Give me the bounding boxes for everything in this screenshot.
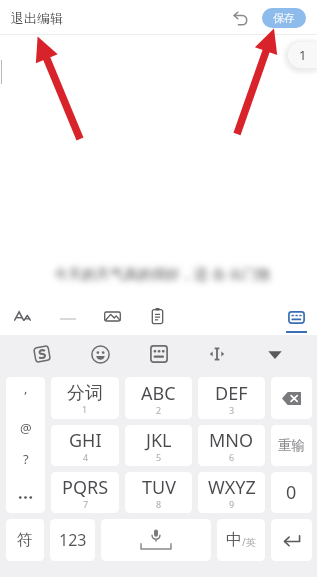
staticText: WXYZ xyxy=(208,475,256,500)
button[interactable]: , xyxy=(6,377,45,513)
staticText: 9 xyxy=(229,498,235,510)
button[interactable]: Undo xyxy=(228,6,252,30)
button[interactable]: Keyboard xyxy=(275,297,317,335)
staticText: 1 xyxy=(82,403,88,415)
staticText: ABC xyxy=(141,381,176,406)
staticText: 3 xyxy=(229,404,235,416)
staticText: ? xyxy=(23,450,29,466)
button[interactable]: Divider line xyxy=(45,297,90,335)
button[interactable]: Delete xyxy=(271,377,312,419)
staticText: DEF xyxy=(215,381,248,406)
staticText: 6 xyxy=(229,451,235,463)
staticText: , xyxy=(24,379,28,395)
button[interactable]: GHI xyxy=(51,425,119,466)
staticText: 1 xyxy=(299,46,307,64)
button[interactable]: 退出编辑 xyxy=(11,10,63,26)
button[interactable]: Voice input / space xyxy=(101,519,211,561)
staticText: MNO xyxy=(209,428,254,453)
button[interactable]: ABC xyxy=(125,377,192,419)
staticText: JKL xyxy=(146,428,172,453)
button[interactable]: JKL xyxy=(125,425,192,466)
button[interactable]: DEF xyxy=(198,377,265,419)
button[interactable]: 中 xyxy=(217,519,265,561)
button[interactable]: PQRS xyxy=(51,472,119,513)
button[interactable]: Hide keyboard xyxy=(262,341,288,367)
button[interactable]: MNO xyxy=(198,425,265,466)
button[interactable]: TUV xyxy=(125,472,192,513)
staticText: /英 xyxy=(242,535,256,549)
staticText: 123 xyxy=(59,529,87,551)
button[interactable]: Sogou input xyxy=(29,341,55,367)
button[interactable]: Enter xyxy=(271,519,312,561)
button[interactable]: WXYZ xyxy=(198,472,265,513)
button[interactable]: Font size xyxy=(0,297,45,335)
staticText: 4 xyxy=(83,451,89,463)
staticText: 中 xyxy=(226,530,242,550)
staticText: 0 xyxy=(286,480,297,505)
staticText: TUV xyxy=(142,475,176,500)
staticText: 8 xyxy=(156,498,162,510)
button[interactable]: 符 xyxy=(6,519,44,561)
staticText: 今天的天气真的很好，适 合 出门散步聊天 xyxy=(54,264,270,283)
button[interactable]: 0 xyxy=(271,472,312,513)
staticText: 保存 xyxy=(273,11,295,25)
staticText: @ xyxy=(20,419,32,435)
staticText: PQRS xyxy=(62,475,109,500)
staticText: 2 xyxy=(156,404,162,416)
staticText: 符 xyxy=(17,530,33,550)
staticText: 退出编辑 xyxy=(11,10,63,26)
staticText: GHI xyxy=(69,428,102,453)
button[interactable]: 保存 xyxy=(262,8,306,28)
staticText: 5 xyxy=(156,451,162,463)
button[interactable]: Keyboard layout xyxy=(146,341,172,367)
button[interactable]: 分词 xyxy=(51,377,119,419)
button[interactable]: 1 xyxy=(282,36,317,74)
button[interactable]: 重输 xyxy=(271,425,312,466)
staticText: 分词 xyxy=(67,382,103,405)
button[interactable]: Move cursor xyxy=(204,341,230,367)
button[interactable]: 123 xyxy=(50,519,95,561)
button[interactable]: Notes xyxy=(135,297,180,335)
button[interactable]: Insert image xyxy=(90,297,135,335)
button[interactable]: Emoji xyxy=(87,341,113,367)
staticText: 7 xyxy=(83,498,89,510)
staticText: 重输 xyxy=(278,437,305,454)
